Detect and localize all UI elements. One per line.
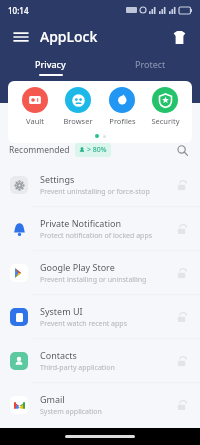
staticText: Private Notification <box>40 217 121 229</box>
staticText: > 80% <box>87 145 107 155</box>
staticText: Browser <box>63 116 93 126</box>
button[interactable]: Google Play Store <box>0 251 200 294</box>
staticText: Prevent watch recent apps <box>40 319 128 329</box>
button[interactable]: Gmail <box>0 383 200 426</box>
button[interactable]: Protect <box>100 53 200 80</box>
staticText: Prevent installing or uninstalling <box>40 275 147 285</box>
button[interactable]: Search <box>173 141 191 159</box>
staticText: Third-party application <box>40 363 115 373</box>
staticText: Contacts <box>40 349 77 361</box>
button[interactable]: Browser <box>57 87 99 126</box>
staticText: System UI <box>40 305 83 317</box>
button[interactable]: Lock Google Play Store <box>172 264 190 282</box>
button[interactable]: System UI <box>0 295 200 338</box>
button[interactable]: Security <box>144 87 186 126</box>
staticText: AppLock <box>40 27 98 46</box>
button[interactable]: Contacts <box>0 339 200 382</box>
button[interactable]: Lock Settings <box>172 176 190 194</box>
staticText: Privacy <box>35 58 66 70</box>
staticText: Vault <box>26 116 44 126</box>
staticText: Profiles <box>109 116 136 126</box>
button[interactable]: Settings <box>0 163 200 206</box>
staticText: Gmail <box>40 393 65 405</box>
staticText: Security <box>151 116 180 126</box>
button[interactable]: Private Notification <box>0 207 200 250</box>
button[interactable]: Menu <box>10 26 32 48</box>
staticText: Recommended <box>9 144 70 156</box>
staticText: 10:14 <box>8 5 29 16</box>
button[interactable]: Lock Private Notification <box>172 220 190 238</box>
button[interactable]: Vault <box>14 87 56 126</box>
button[interactable]: Profiles <box>101 87 143 126</box>
staticText: Prevent uninstalling or force-stop <box>40 187 150 197</box>
staticText: Protect notification of locked apps <box>40 231 153 241</box>
button[interactable]: Lock System UI <box>172 308 190 326</box>
staticText: Settings <box>40 173 75 185</box>
staticText: Protect <box>135 58 166 70</box>
button[interactable]: Theme <box>168 26 190 48</box>
staticText: System application <box>40 407 102 417</box>
staticText: Google Play Store <box>40 261 115 273</box>
button[interactable]: Lock Gmail <box>172 396 190 414</box>
button[interactable]: Lock Contacts <box>172 352 190 370</box>
button[interactable]: Privacy <box>0 53 100 80</box>
